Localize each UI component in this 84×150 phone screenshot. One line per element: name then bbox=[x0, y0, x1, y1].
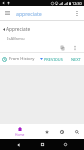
button[interactable]: More options bbox=[71, 6, 83, 20]
button[interactable]: Copy bbox=[59, 45, 65, 51]
staticText: NEXT bbox=[71, 57, 81, 62]
button[interactable]: PREVIOUS bbox=[43, 55, 64, 64]
staticText: 12:30 bbox=[72, 1, 82, 6]
staticText: IsAlfamu bbox=[7, 36, 25, 42]
button[interactable]: Home bbox=[37, 139, 48, 150]
staticText: PREVIOUS bbox=[44, 57, 63, 62]
staticText: Home bbox=[15, 132, 25, 136]
button[interactable]: NEXT bbox=[70, 55, 82, 64]
button[interactable]: History bbox=[54, 130, 69, 134]
staticText: From History bbox=[9, 56, 35, 62]
button[interactable]: Favorites bbox=[39, 130, 54, 134]
button[interactable]: Back bbox=[13, 139, 24, 150]
staticText: appreciate bbox=[16, 10, 42, 17]
button[interactable]: Search bbox=[69, 130, 84, 134]
button[interactable]: Menu bbox=[0, 6, 14, 20]
button[interactable]: Home bbox=[0, 127, 39, 136]
button[interactable]: More bbox=[72, 45, 78, 51]
button[interactable]: Recent apps bbox=[60, 139, 71, 150]
staticText: Appreciate bbox=[6, 26, 31, 33]
